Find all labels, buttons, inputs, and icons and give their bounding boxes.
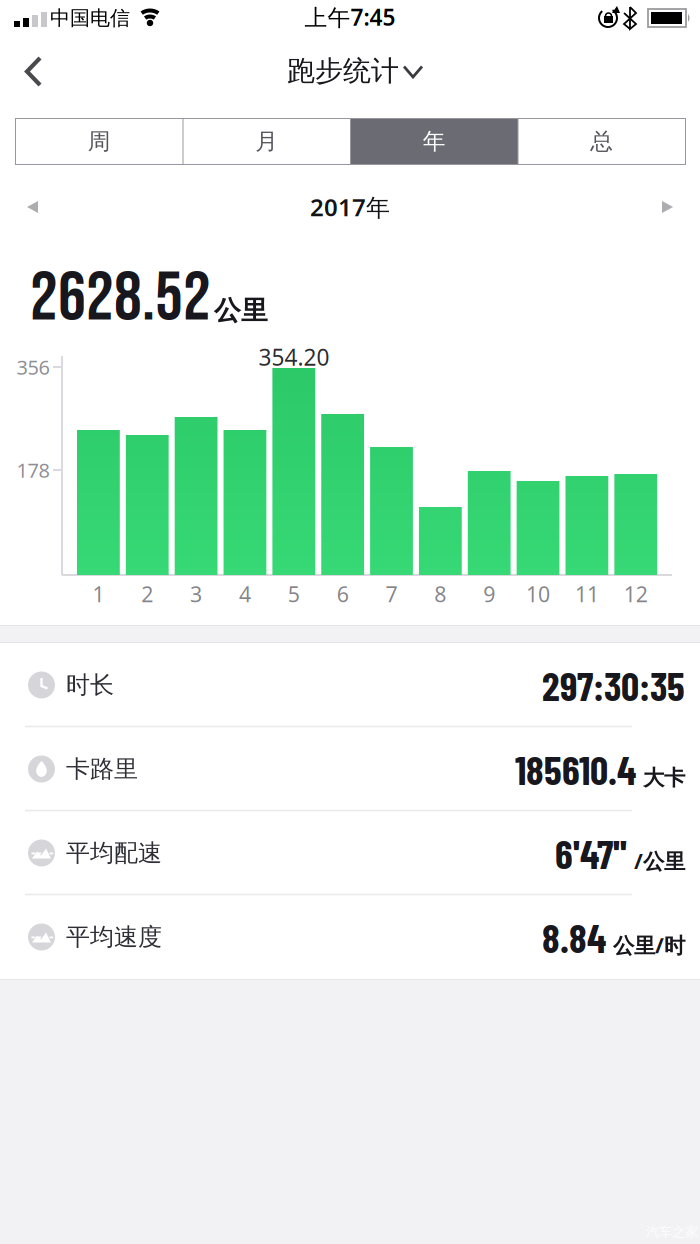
staticText: 185610.4 [515,745,636,793]
staticText: 9 [483,580,495,608]
staticText: 时长 [66,670,114,700]
button[interactable]: 月 [183,119,350,164]
staticText: 2628.52 [30,257,211,340]
staticText: /公里 [634,847,685,875]
staticText: 4 [239,580,251,608]
staticText: 1 [92,580,104,608]
staticText: 10 [526,580,550,608]
staticText: 6'47'' [555,829,627,877]
staticText: 周 [88,128,111,155]
staticText: 5 [288,580,300,608]
staticText: 公里 [214,294,268,327]
button[interactable]: 下一年 [646,185,690,229]
staticText: 卡路里 [66,754,138,784]
staticText: 月 [255,128,278,155]
staticText: 12 [624,580,648,608]
button[interactable]: Back [11,43,55,99]
staticText: 平均配速 [66,838,162,868]
staticText: 356 [16,354,49,380]
staticText: 3 [190,580,202,608]
staticText: 年 [423,128,446,155]
staticText: 6 [337,580,349,608]
button[interactable]: 总 [518,119,685,164]
staticText: 跑步统计 [287,54,399,88]
staticText: 中国电信 [50,6,130,30]
button[interactable]: 年 [351,119,517,164]
staticText: 11 [575,580,599,608]
button[interactable]: 跑步统计 [287,54,399,88]
staticText: 平均速度 [66,922,162,952]
staticText: 公里/时 [613,931,685,959]
staticText: 7 [385,580,397,608]
staticText: 大卡 [643,765,685,791]
staticText: 上午7:45 [304,2,395,32]
staticText: 2017年 [310,191,390,223]
staticText: 354.20 [258,342,329,372]
staticText: 2 [141,580,153,608]
staticText: 总 [590,128,613,155]
staticText: 178 [16,457,49,483]
staticText: 8.84 [542,913,606,961]
staticText: 8 [434,580,446,608]
button[interactable]: 周 [16,119,182,164]
button[interactable]: 上一年 [10,185,54,229]
staticText: 297:30:35 [542,661,685,709]
